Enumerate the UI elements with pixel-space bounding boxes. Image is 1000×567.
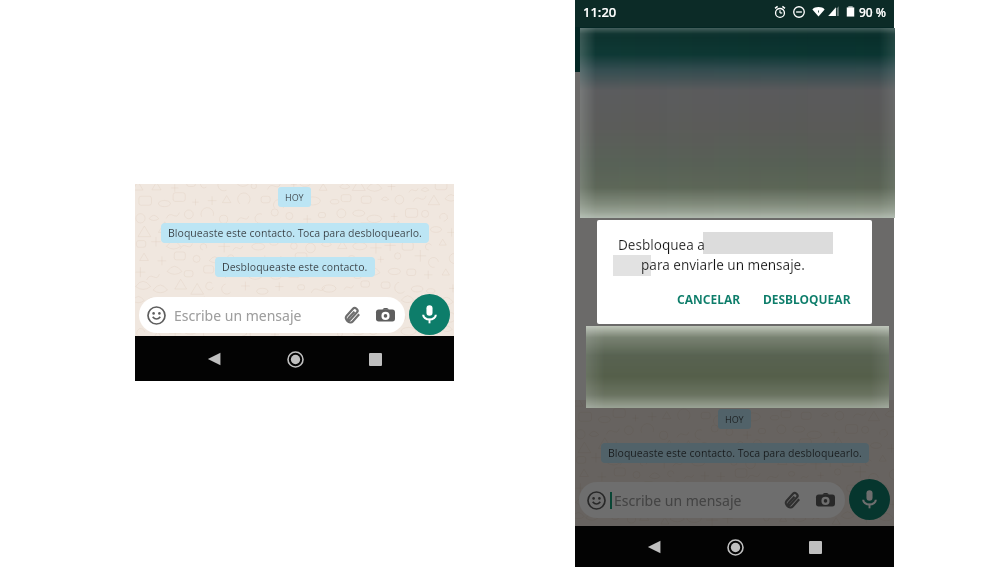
staticText: Desbloqueaste este contacto. bbox=[222, 260, 368, 274]
button[interactable]: Home bbox=[280, 344, 310, 374]
staticText: CANCELAR bbox=[677, 291, 741, 307]
button[interactable]: Attach bbox=[343, 306, 362, 325]
button[interactable]: Camera bbox=[816, 491, 835, 510]
button[interactable]: Record voice message bbox=[849, 479, 890, 520]
button[interactable]: Emoji bbox=[147, 306, 166, 325]
button[interactable]: Bloqueaste este contacto. Toca para desb… bbox=[161, 223, 429, 243]
staticText: Escribe un mensaje bbox=[614, 491, 742, 510]
button[interactable]: Desbloqueaste este contacto. bbox=[215, 257, 375, 277]
button[interactable]: Recent apps bbox=[360, 344, 390, 374]
button[interactable]: HOY bbox=[278, 187, 311, 207]
staticText: Desbloquea a bbox=[618, 236, 705, 254]
button[interactable]: Attach bbox=[783, 491, 802, 510]
button[interactable]: Back bbox=[199, 344, 229, 374]
staticText: DESBLOQUEAR bbox=[763, 291, 851, 307]
staticText: Bloqueaste este contacto. Toca para desb… bbox=[168, 226, 422, 240]
button[interactable]: Home bbox=[720, 532, 750, 562]
staticText: Bloqueaste este contacto. Toca para desb… bbox=[608, 446, 862, 460]
button[interactable]: HOY bbox=[718, 409, 751, 429]
button[interactable]: CANCELAR bbox=[670, 286, 748, 312]
staticText: HOY bbox=[725, 413, 744, 425]
button[interactable]: DESBLOQUEAR bbox=[756, 286, 858, 312]
button[interactable]: Camera bbox=[376, 306, 395, 325]
button[interactable]: Back bbox=[639, 532, 669, 562]
staticText: 11:20 bbox=[583, 3, 617, 21]
staticText: Escribe un mensaje bbox=[174, 306, 302, 325]
button[interactable]: Bloqueaste este contacto. Toca para desb… bbox=[601, 443, 869, 463]
staticText: para enviarle un mensaje. bbox=[641, 256, 805, 274]
staticText: HOY bbox=[285, 191, 304, 203]
button[interactable]: Emoji bbox=[579, 482, 845, 518]
button[interactable]: Record voice message bbox=[409, 294, 450, 335]
button[interactable]: Emoji bbox=[139, 297, 405, 333]
staticText: 90 % bbox=[859, 4, 887, 20]
button[interactable]: Emoji bbox=[587, 491, 606, 510]
button[interactable]: Recent apps bbox=[800, 532, 830, 562]
